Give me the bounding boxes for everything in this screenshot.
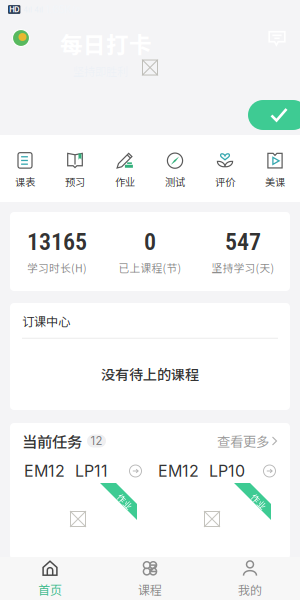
- staticText: 没有待上的课程: [101, 363, 199, 384]
- button[interactable]: 课程: [100, 557, 200, 600]
- button[interactable]: 作业: [100, 135, 150, 202]
- staticText: 评价: [215, 174, 235, 189]
- button[interactable]: 预习: [50, 135, 100, 202]
- image: [70, 511, 86, 527]
- image: [142, 59, 158, 75]
- image: [204, 511, 220, 527]
- button[interactable]: Check in: [248, 100, 300, 130]
- button[interactable]: 首页: [0, 557, 100, 600]
- staticText: 学习时长(H): [27, 260, 87, 275]
- button[interactable]: 评价: [200, 135, 250, 202]
- button[interactable]: Profile: [8, 25, 34, 51]
- staticText: 作业: [116, 495, 134, 508]
- button[interactable]: 美课: [250, 135, 300, 202]
- staticText: 13165: [27, 228, 87, 256]
- staticText: 首页: [38, 581, 62, 598]
- staticText: 课程: [138, 581, 162, 598]
- staticText: 坚持学习(天): [211, 260, 274, 275]
- staticText: 订课中心: [22, 312, 70, 330]
- staticText: 测试: [165, 174, 185, 189]
- staticText: 作业: [115, 174, 135, 189]
- staticText: 12: [90, 434, 102, 448]
- staticText: 0: [144, 228, 156, 256]
- button[interactable]: EM12 LP10: [153, 457, 281, 555]
- staticText: 作业: [250, 495, 268, 508]
- button[interactable]: 我的: [200, 557, 300, 600]
- staticText: 美课: [265, 174, 285, 189]
- button[interactable]: 查看更多: [217, 433, 278, 449]
- staticText: EM12 LP11: [24, 461, 108, 481]
- staticText: EM12 LP10: [158, 461, 245, 481]
- staticText: 课表: [15, 174, 35, 189]
- staticText: 我的: [238, 581, 262, 598]
- staticText: HD: [9, 5, 19, 14]
- staticText: 预习: [65, 174, 85, 189]
- button[interactable]: Messages: [262, 23, 292, 53]
- staticText: 已上课程(节): [118, 260, 181, 275]
- staticText: 当前任务: [22, 430, 82, 452]
- staticText: 查看更多: [217, 431, 269, 451]
- button[interactable]: 测试: [150, 135, 200, 202]
- button[interactable]: EM12 LP11: [19, 457, 147, 555]
- staticText: 547: [225, 228, 261, 256]
- button[interactable]: 课表: [0, 135, 50, 202]
- staticText: 每日打卡: [60, 27, 152, 60]
